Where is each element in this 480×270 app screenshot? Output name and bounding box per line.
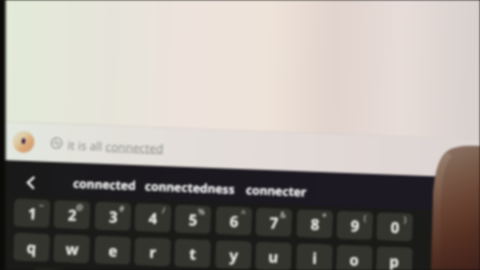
button[interactable]: 9 (336, 211, 373, 240)
staticText: 0 (390, 217, 400, 237)
button[interactable]: Previous suggestions (17, 169, 44, 196)
staticText: 2 (67, 205, 77, 225)
staticText: connectedness (145, 177, 235, 197)
staticText: 4 (148, 208, 158, 228)
staticText: 6 (229, 211, 239, 231)
staticText: ~ (39, 199, 44, 211)
staticText: o (349, 249, 360, 270)
button[interactable]: 8 (296, 209, 333, 238)
staticText: ) (404, 213, 407, 224)
button[interactable]: u (255, 242, 292, 270)
button[interactable]: w (53, 234, 90, 263)
button[interactable]: 3 (94, 202, 131, 231)
button[interactable]: 0 (376, 212, 413, 241)
staticText: q (26, 237, 37, 257)
button[interactable]: e (94, 236, 131, 265)
button[interactable]: 1 (13, 199, 50, 228)
staticText: 7 (269, 212, 279, 232)
staticText: 8 (310, 214, 320, 234)
button[interactable]: connected (73, 172, 136, 196)
button[interactable]: a (32, 268, 69, 270)
button[interactable]: 4 (134, 203, 171, 232)
staticText: * (322, 210, 327, 221)
staticText: p (389, 251, 400, 270)
staticText: ( (364, 212, 367, 223)
staticText: r (149, 242, 157, 262)
staticText: 3 (108, 206, 118, 226)
button[interactable]: y (215, 240, 252, 269)
button[interactable]: q (13, 233, 50, 262)
staticText: 1 (27, 203, 37, 223)
staticText: & (280, 209, 286, 220)
staticText: u (268, 246, 279, 267)
staticText: connecter (246, 181, 307, 200)
button[interactable]: i (296, 243, 333, 270)
staticText: w (65, 238, 79, 259)
staticText: @ (76, 201, 84, 212)
staticText: e (108, 240, 118, 260)
button[interactable]: r (134, 237, 171, 266)
staticText: i (312, 248, 318, 268)
button[interactable]: 6 (215, 206, 252, 235)
button[interactable]: connecter (246, 178, 307, 203)
button[interactable]: Account (12, 130, 35, 153)
staticText: / (162, 204, 165, 215)
staticText: connected (73, 175, 136, 193)
button[interactable]: connectedness (145, 174, 235, 200)
button[interactable]: p (376, 246, 413, 270)
staticText: t (189, 243, 197, 263)
staticText: 5 (188, 209, 198, 229)
staticText: connected (105, 138, 164, 156)
button[interactable]: o (336, 245, 373, 270)
staticText: 9 (350, 215, 360, 235)
button[interactable]: 7 (255, 208, 292, 237)
staticText: % (198, 205, 205, 217)
staticText: y (229, 245, 239, 265)
staticText: # (119, 202, 125, 214)
staticText: ^ (241, 207, 246, 218)
button[interactable]: 5 (174, 205, 211, 234)
staticText: it is all (67, 136, 106, 154)
button[interactable]: 2 (53, 200, 90, 229)
button[interactable]: t (174, 239, 211, 268)
